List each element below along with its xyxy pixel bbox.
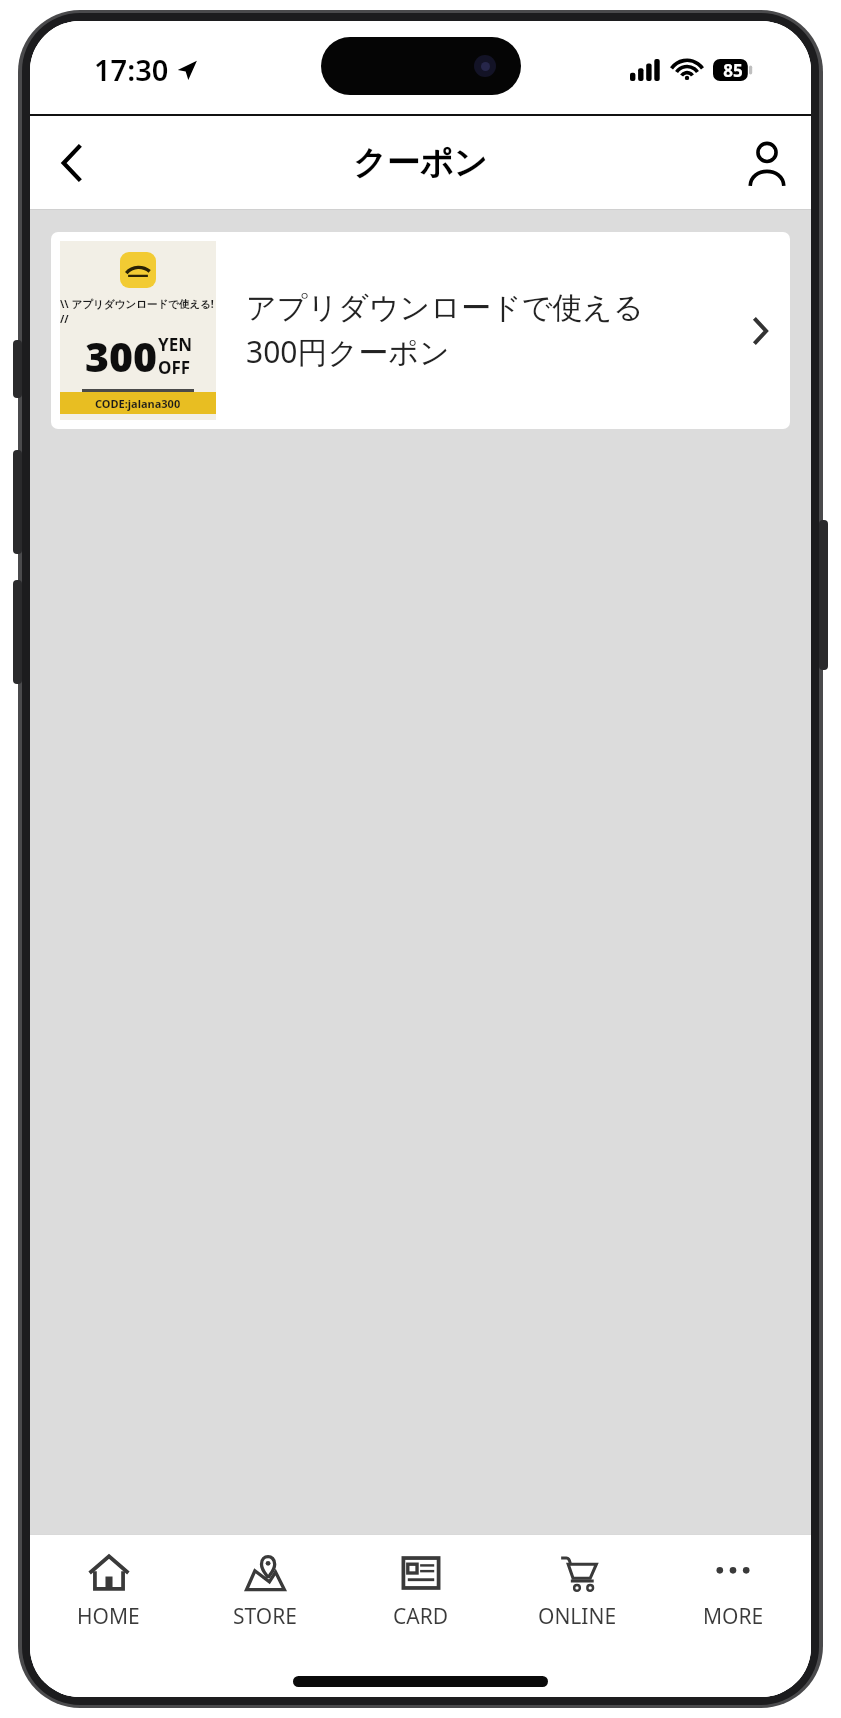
button[interactable]: Back	[30, 116, 114, 209]
staticText: CARD	[393, 1602, 449, 1631]
staticText: YEN	[158, 333, 192, 356]
staticText: CODE:jalana300	[95, 396, 181, 411]
staticText: STORE	[233, 1602, 297, 1631]
button[interactable]: STORE	[187, 1535, 343, 1647]
staticText: ONLINE	[538, 1602, 617, 1631]
staticText: MORE	[703, 1602, 764, 1631]
staticText: 300円クーポン	[246, 331, 450, 372]
staticText: 300	[85, 328, 158, 384]
button[interactable]: ONLINE	[499, 1535, 655, 1647]
button[interactable]: CARD	[343, 1535, 499, 1647]
staticText: \\ アプリダウンロードで使える! //	[60, 297, 216, 326]
button[interactable]: \\ アプリダウンロードで使える! //	[51, 232, 790, 429]
staticText: 85	[718, 59, 748, 81]
button[interactable]: Account	[723, 116, 811, 209]
button[interactable]: HOME	[30, 1535, 187, 1647]
staticText: 17:30	[94, 50, 169, 89]
button[interactable]: MORE	[655, 1535, 811, 1647]
staticText: アプリダウンロードで使える	[246, 289, 644, 327]
staticText: OFF	[158, 356, 191, 379]
staticText: クーポン	[353, 142, 488, 184]
staticText: HOME	[77, 1602, 140, 1631]
